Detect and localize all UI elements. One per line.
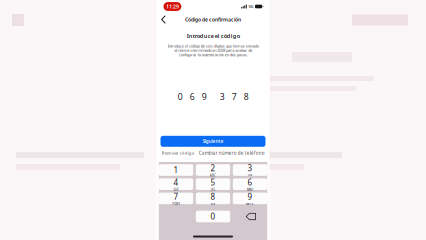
staticText: 1 — [173, 165, 178, 175]
staticText: Siguiente — [202, 138, 223, 144]
staticText: 3 — [247, 163, 252, 174]
staticText: 9 — [201, 91, 206, 102]
staticText: Introduce el código — [186, 32, 239, 40]
staticText: Cambiar número de teléfono — [198, 150, 264, 156]
button[interactable]: Back — [159, 13, 169, 25]
button[interactable]: 3 — [233, 164, 267, 176]
staticText: GHI — [173, 188, 178, 191]
staticText: 4 — [173, 177, 178, 188]
staticText: 11:29 — [166, 3, 179, 10]
button[interactable]: 5 — [196, 178, 230, 190]
staticText: 7 — [231, 91, 236, 102]
staticText: DEF — [248, 174, 252, 177]
staticText: PQRS — [172, 202, 179, 206]
staticText: TUV — [210, 202, 215, 206]
staticText: 6 — [247, 177, 252, 188]
staticText: WXYZ — [246, 202, 254, 206]
staticText: 6 — [189, 91, 194, 102]
staticText: 3 — [219, 91, 224, 102]
staticText: MNO — [247, 188, 253, 191]
staticText: 0 — [210, 211, 215, 222]
button[interactable]: 6 — [233, 178, 267, 190]
staticText: 8 — [243, 91, 248, 102]
button[interactable]: 8 — [196, 193, 230, 204]
staticText: 2 — [210, 163, 215, 174]
button[interactable]: Reenviar código — [161, 150, 194, 156]
button[interactable]: 4 — [159, 178, 193, 190]
staticText: 5 — [210, 177, 215, 188]
button[interactable]: Siguiente — [160, 136, 265, 147]
staticText: Código de confirmación — [185, 16, 241, 23]
button[interactable]: 9 — [233, 193, 267, 204]
staticText: 9 — [247, 191, 252, 202]
button[interactable]: 7 — [159, 193, 193, 204]
button[interactable]: 2 — [196, 164, 230, 176]
button[interactable]: 0 — [196, 211, 230, 222]
staticText: 8 — [210, 191, 215, 202]
staticText: Reenviar código — [161, 150, 194, 156]
staticText: JKL — [211, 188, 215, 191]
button[interactable]: 1 — [159, 164, 193, 176]
staticText: ABC — [210, 174, 216, 177]
staticText: Introduce el código de seis dígitos que … — [167, 43, 258, 57]
staticText: 5G — [248, 4, 253, 9]
button[interactable]: Delete — [233, 211, 267, 222]
button[interactable]: Cambiar número de teléfono — [198, 150, 264, 156]
staticText: 7 — [173, 191, 178, 202]
staticText: 0 — [177, 91, 182, 102]
